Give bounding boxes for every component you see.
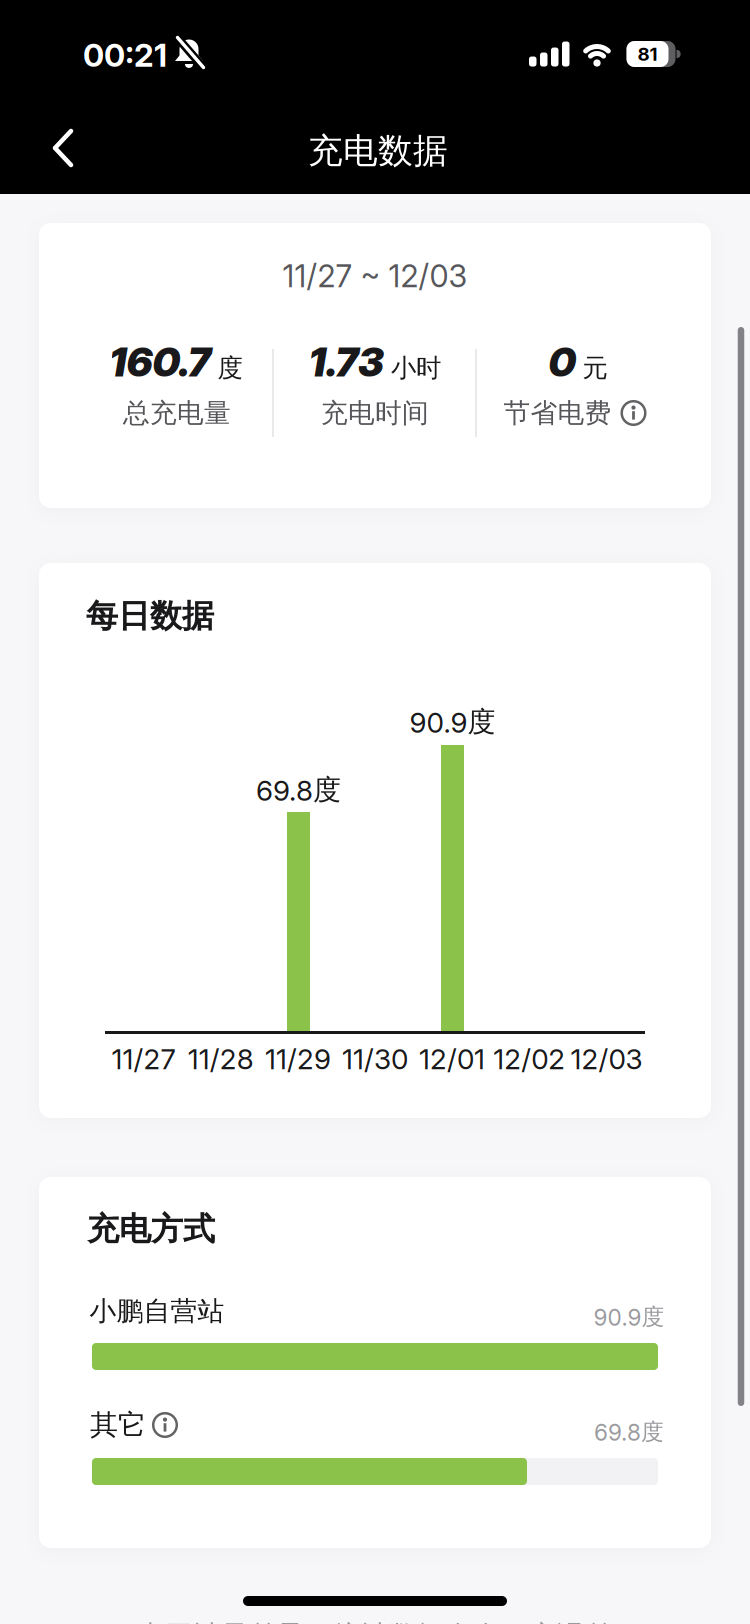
staticText: 69.8度 [594, 1418, 664, 1446]
staticText: 11/27 ~ 12/03 [282, 258, 467, 294]
staticText: 11/29 [265, 1042, 331, 1075]
staticText: 1.73 [309, 338, 384, 386]
staticText: 由于计量差异，统计数据存在一定误差 [137, 1619, 613, 1624]
staticText: 11/27 [112, 1042, 176, 1075]
staticText: 充电时间 [321, 397, 429, 429]
button[interactable]: Back [33, 118, 93, 178]
staticText: 度 [217, 353, 242, 384]
button[interactable]: About other charging [90, 1408, 178, 1442]
staticText: 90.9度 [409, 705, 495, 739]
staticText: 11/30 [342, 1042, 408, 1075]
staticText: 160.7 [109, 338, 210, 386]
staticText: 11/28 [188, 1042, 254, 1075]
staticText: 其它 [90, 1408, 146, 1442]
staticText: 小鹏自营站 [89, 1295, 224, 1327]
staticText: 00:21 [83, 36, 167, 74]
staticText: 每日数据 [86, 596, 214, 636]
staticText: 12/02 [493, 1042, 565, 1075]
staticText: 充电方式 [87, 1209, 215, 1249]
staticText: 12/01 [419, 1042, 485, 1075]
staticText: 总充电量 [123, 397, 231, 429]
button[interactable]: About saved cost [503, 397, 646, 429]
staticText: 节省电费 [503, 397, 611, 429]
staticText: 小时 [391, 353, 441, 384]
staticText: 元 [582, 353, 607, 384]
staticText: 90.9度 [593, 1303, 664, 1331]
staticText: 12/03 [570, 1042, 642, 1075]
staticText: 0 [548, 338, 575, 386]
staticText: 69.8度 [256, 773, 341, 807]
staticText: 81 [637, 43, 657, 65]
staticText: 充电数据 [308, 130, 448, 172]
